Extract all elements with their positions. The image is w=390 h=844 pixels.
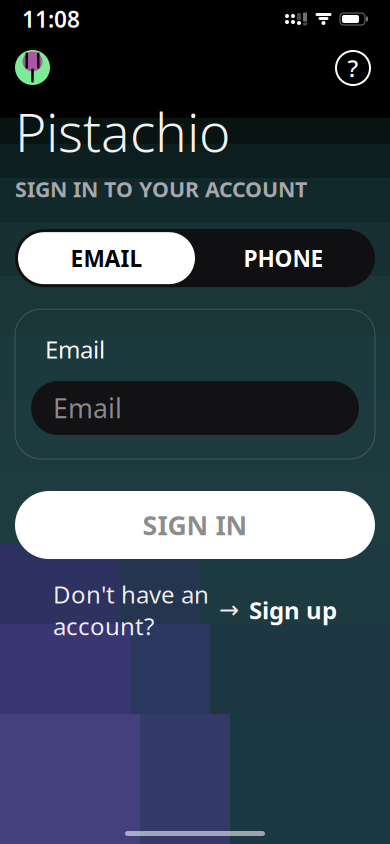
button[interactable]: SIGN IN [15, 491, 375, 559]
staticText: EMAIL [70, 243, 142, 273]
staticText: → [219, 596, 239, 624]
staticText: ? [347, 52, 358, 84]
staticText: Pistachio [15, 96, 230, 167]
staticText: PHONE [243, 243, 323, 273]
staticText: Don't have an account? [53, 578, 209, 642]
button[interactable]: Don't have an account? [15, 593, 375, 627]
staticText: Email [53, 390, 122, 426]
button[interactable]: EMAIL [18, 232, 195, 284]
button[interactable]: Email [31, 381, 359, 435]
staticText: SIGN IN TO YOUR ACCOUNT [15, 175, 307, 203]
staticText: SIGN IN [142, 507, 247, 543]
button[interactable]: Help [331, 46, 375, 90]
staticText: Email [45, 333, 105, 365]
staticText: Sign up [249, 594, 337, 626]
staticText: 11:08 [22, 4, 80, 34]
button[interactable]: PHONE [195, 232, 372, 284]
